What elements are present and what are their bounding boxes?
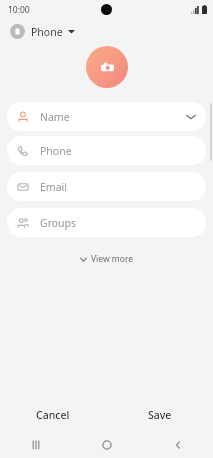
button[interactable]: Groups [7,208,206,237]
staticText: Save [148,408,172,422]
staticText: Email [40,180,196,194]
staticText: Cancel [36,408,70,422]
button[interactable]: Save [106,398,213,432]
button[interactable]: Name [7,102,206,131]
button[interactable]: Phone [7,136,206,165]
button[interactable]: Recents [0,432,71,458]
staticText: View more [91,253,134,265]
staticText: Phone [40,144,196,158]
button[interactable]: Cancel [0,398,106,432]
staticText: 10:00 [8,4,30,16]
button[interactable]: Home [71,432,142,458]
button[interactable]: View more [73,250,141,268]
staticText: Name [40,110,186,124]
button[interactable]: Email [7,172,206,201]
staticText: Phone [31,25,63,39]
staticText: Groups [40,216,196,230]
button[interactable]: Phone [7,21,78,42]
button[interactable]: Back [142,432,213,458]
button[interactable]: Add contact photo [86,46,128,88]
